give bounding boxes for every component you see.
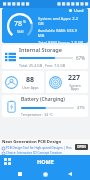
staticText: Used [74,8,84,13]
staticText: 67% [76,55,85,61]
staticText: Internal Storage [19,46,62,53]
other: System apps [49,76,62,89]
other: User apps [5,76,18,89]
staticText: System and Apps: 2.2 GB [38,16,84,26]
staticText: RAM [17,30,24,34]
staticText: 227 [68,73,81,83]
staticText: User Apps [22,85,39,90]
button[interactable]: Next Generation PCB Design [0,139,90,155]
staticText: 47% [77,105,85,110]
staticText: 88 [26,75,35,85]
button[interactable]: Home [40,169,50,179]
button[interactable]: Battery (Charging) [2,95,88,117]
staticText: Choice: Interactive 3D Concept Creation [6,151,62,155]
button[interactable]: Internal Storage [2,45,88,69]
button[interactable]: HOME [37,158,54,165]
staticText: Battery (Charging) [21,96,65,103]
button[interactable]: Menu [3,157,12,166]
staticText: 78 [14,19,23,29]
staticText: % [23,19,26,24]
staticText: OPEN [77,145,86,149]
staticText: System Apps [69,83,81,91]
button[interactable]: 78 [2,8,88,43]
staticText: Next Generation PCB Design [2,139,62,145]
staticText: Temperature : 34 °C [21,112,53,117]
button[interactable]: OPEN [75,144,88,150]
staticText: Available RAM: 633.9 MB [38,28,84,38]
staticText: HOME [37,158,54,165]
staticText: PCB Design Tool for High-speed Designs |… [6,146,72,150]
staticText: Total RAM Space: 2.8 GB [38,40,84,43]
button[interactable]: System apps [46,71,88,93]
button[interactable]: User apps [2,71,44,93]
button[interactable]: Recents [15,169,25,179]
button[interactable]: Back [65,169,75,179]
staticText: Total: 25.4 GB , Free: 7.6 GB [19,63,66,68]
